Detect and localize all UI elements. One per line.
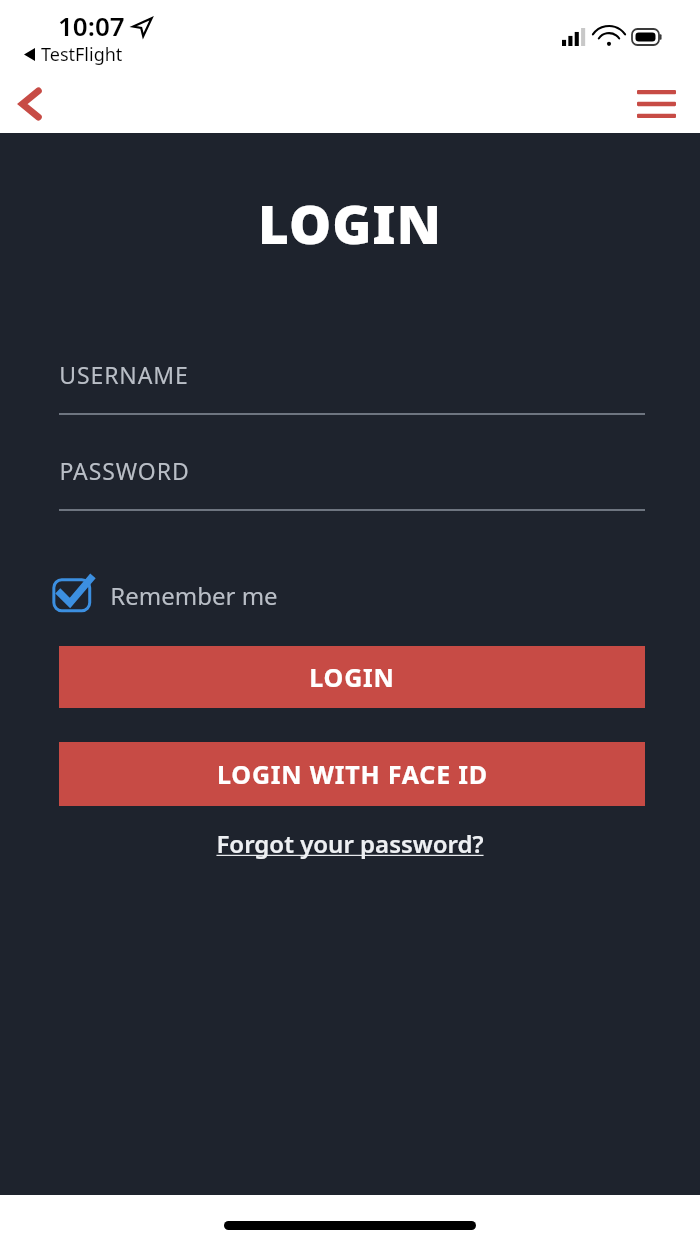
staticText: LOGIN WITH FACE ID (217, 757, 488, 791)
staticText: Forgot your password? (216, 827, 484, 860)
button[interactable]: Back (2, 76, 58, 132)
button[interactable]: Forgot your password? (216, 827, 484, 860)
staticText: PASSWORD (59, 455, 190, 486)
staticText: 10:07 (58, 8, 125, 43)
button[interactable]: LOGIN (59, 646, 645, 708)
staticText: USERNAME (59, 359, 189, 390)
button[interactable]: Menu (624, 76, 688, 132)
staticText: TestFlight (41, 42, 123, 67)
staticText: LOGIN (309, 660, 395, 694)
button[interactable]: Remember me (52, 573, 278, 617)
staticText: LOGIN (258, 187, 442, 259)
staticText: Remember me (110, 579, 278, 612)
button[interactable]: LOGIN WITH FACE ID (59, 742, 645, 806)
